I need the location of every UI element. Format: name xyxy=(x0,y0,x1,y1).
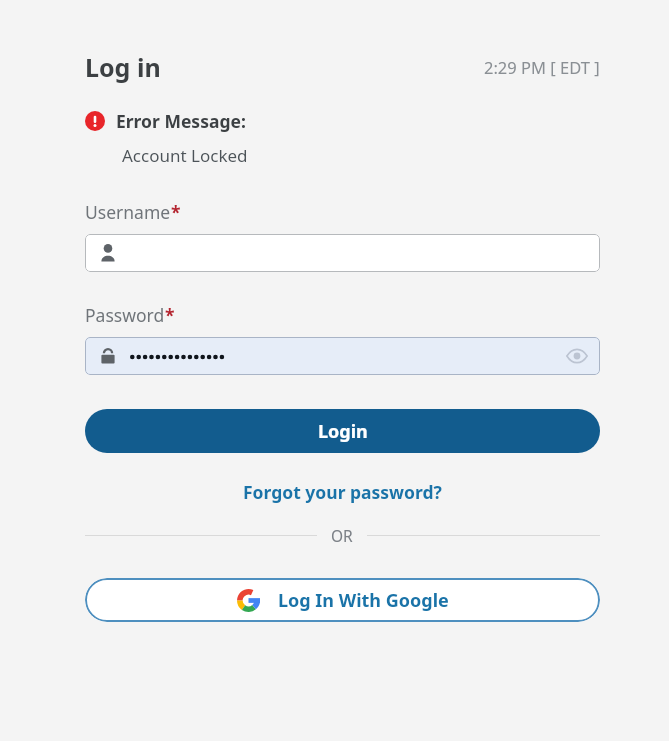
staticText: Password xyxy=(85,303,165,327)
button[interactable]: Login xyxy=(85,409,600,453)
staticText: Login xyxy=(318,419,368,444)
staticText: 2:29 PM [ EDT ] xyxy=(484,56,600,78)
button[interactable]: Forgot your password? xyxy=(243,480,442,504)
staticText: OR xyxy=(331,525,353,546)
staticText: * xyxy=(171,200,181,224)
staticText: Error Message: xyxy=(116,109,246,133)
staticText: Log in xyxy=(85,50,161,84)
button[interactable]: Log In With Google xyxy=(85,578,600,622)
staticText: Account Locked xyxy=(122,144,248,167)
button[interactable] xyxy=(85,234,600,272)
staticText: Log In With Google xyxy=(278,588,449,613)
staticText: * xyxy=(165,303,175,327)
staticText: Username xyxy=(85,200,171,224)
staticText: Forgot your password? xyxy=(243,480,442,504)
button[interactable]: Show password xyxy=(560,339,594,373)
button[interactable]: Show password xyxy=(85,337,600,375)
